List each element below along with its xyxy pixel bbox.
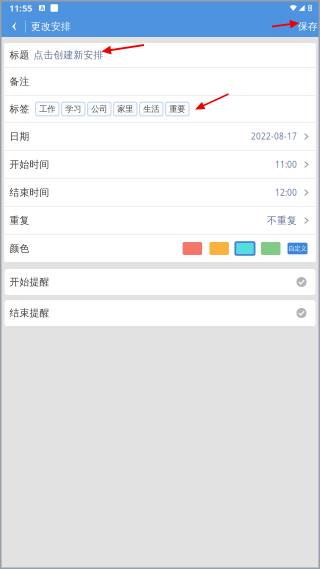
staticText: 不重复 [267, 214, 297, 227]
button[interactable]: 结束提醒 [4, 300, 315, 326]
button[interactable]: 家里 [114, 102, 137, 116]
button[interactable]: Selected color [234, 241, 255, 256]
staticText: 结束提醒 [9, 307, 49, 319]
staticText: 2022-08-17 [251, 131, 297, 142]
button[interactable]: 保存 [296, 16, 320, 36]
staticText: 日期 [9, 130, 29, 143]
staticText: 结束时间 [9, 186, 49, 199]
staticText: 备注 [9, 75, 29, 88]
button[interactable]: 开始时间 [4, 151, 315, 178]
staticText: 开始时间 [9, 158, 49, 171]
staticText: 保存 [298, 20, 318, 33]
staticText: 更改安排 [31, 20, 71, 33]
button[interactable]: 开始提醒 [4, 269, 315, 295]
button[interactable]: 结束时间 [4, 179, 315, 206]
staticText: 重复 [9, 214, 29, 227]
button[interactable]: 备注 [4, 68, 315, 95]
staticText: 颜色 [9, 242, 29, 255]
button[interactable]: 学习 [62, 102, 85, 116]
staticText: 公司 [91, 104, 107, 114]
staticText: 学习 [65, 104, 81, 114]
button[interactable]: 重要 [166, 102, 189, 116]
staticText: 11:00 [275, 159, 297, 170]
staticText: 开始提醒 [9, 276, 49, 288]
staticText: 标签 [9, 103, 29, 115]
button[interactable]: Color [209, 242, 229, 255]
staticText: 生活 [143, 104, 159, 114]
staticText: 12:00 [275, 187, 297, 198]
staticText: 工作 [39, 104, 55, 114]
button[interactable]: 重复 [4, 207, 315, 234]
button[interactable]: 工作 [36, 102, 59, 116]
staticText: 11:55 [9, 2, 32, 14]
staticText: 自定义 [288, 245, 306, 252]
button[interactable]: 自定义 [287, 243, 307, 254]
staticText: A [40, 4, 44, 12]
button[interactable]: 公司 [88, 102, 111, 116]
staticText: 家里 [117, 104, 133, 114]
staticText: 标题 [9, 49, 29, 61]
button[interactable]: 日期 [4, 123, 315, 150]
button[interactable]: Back [3, 16, 25, 36]
button[interactable]: 标题 [4, 43, 315, 67]
button[interactable]: 生活 [140, 102, 163, 116]
staticText: 点击创建新安排 [33, 49, 103, 61]
button[interactable]: Color [183, 242, 202, 255]
button[interactable]: Color [261, 242, 280, 255]
staticText: 重要 [169, 104, 185, 114]
